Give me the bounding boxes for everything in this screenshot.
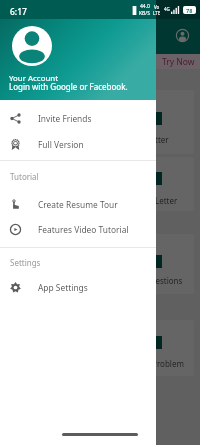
staticText: Tutorial xyxy=(10,171,39,182)
staticText: Login with Google or Facebook. xyxy=(9,81,128,92)
staticText: 44.0 xyxy=(140,3,150,10)
button[interactable]: Report a Problem xyxy=(6,320,194,376)
staticText: KB/S xyxy=(139,10,150,17)
staticText: 78 xyxy=(186,7,193,14)
staticText: Full Version xyxy=(38,139,84,150)
staticText: Settings xyxy=(10,257,41,268)
button[interactable]: Invite Friends xyxy=(0,105,156,131)
staticText: Create Resume Tour xyxy=(38,199,118,210)
button[interactable]: Try Now xyxy=(0,54,200,69)
button[interactable]: Features Video Tutorial xyxy=(0,216,156,242)
staticText: App Settings xyxy=(38,282,88,293)
staticText: Vo xyxy=(154,4,160,10)
staticText: Resume Cover Letter xyxy=(99,195,178,206)
button[interactable]: Full Version xyxy=(0,131,156,157)
button[interactable]: Your Account xyxy=(0,0,156,100)
staticText: Try Now xyxy=(162,56,195,68)
staticText: 6:17 xyxy=(10,6,27,18)
staticText: 4G xyxy=(164,6,170,12)
staticText: LTE xyxy=(153,10,161,16)
staticText: Your Account xyxy=(9,73,59,84)
button[interactable]: Email Cover Letter xyxy=(6,90,194,154)
staticText: Features Video Tutorial xyxy=(38,224,129,235)
staticText: Interview Questions xyxy=(107,275,183,286)
staticText: Email Cover Letter xyxy=(100,134,169,145)
staticText: Report a Problem xyxy=(118,358,184,369)
staticText: Invite Friends xyxy=(38,113,92,124)
button[interactable]: App Settings xyxy=(0,274,156,300)
button[interactable]: Resume Cover Letter xyxy=(6,157,194,211)
button[interactable]: Account xyxy=(176,29,189,42)
button[interactable]: Create Resume Tour xyxy=(0,191,156,217)
button[interactable]: Interview Questions xyxy=(6,234,194,294)
